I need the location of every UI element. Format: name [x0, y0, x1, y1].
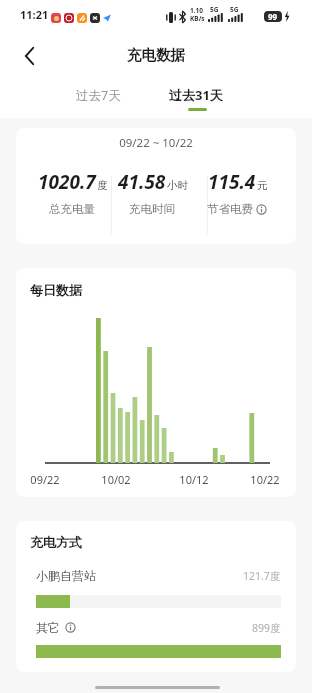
staticText: 小时 [167, 179, 188, 192]
staticText: 1.10 [190, 6, 203, 15]
staticText: 小鹏自营站 [36, 568, 96, 583]
button[interactable]: 节省电费 [187, 202, 287, 216]
staticText: 充电方式 [30, 534, 82, 550]
button[interactable]: 小鹏自营站 [36, 568, 281, 583]
staticText: 总充电量 [49, 202, 95, 216]
staticText: 10/12 [179, 472, 209, 487]
staticText: 121.7度 [243, 569, 281, 583]
button[interactable]: 其它 [36, 620, 281, 635]
staticText: KB/s [190, 14, 205, 23]
staticText: 09/22 ~ 10/22 [119, 135, 193, 151]
button[interactable]: 过去31天 [158, 80, 234, 110]
staticText: 899度 [252, 621, 281, 635]
staticText: 99 [268, 11, 278, 22]
staticText: 115.4 [208, 169, 256, 195]
staticText: 其它 [36, 620, 60, 635]
staticText: 充电数据 [127, 46, 185, 64]
staticText: 10/02 [101, 472, 131, 487]
staticText: 节省电费 [207, 202, 253, 216]
staticText: 10/22 [250, 472, 280, 487]
staticText: 元 [257, 179, 268, 192]
staticText: 度 [97, 179, 108, 192]
staticText: 11:21 [20, 7, 49, 22]
staticText: 09/22 [30, 472, 60, 487]
staticText: 41.58 [118, 169, 166, 195]
staticText: 5G [230, 5, 239, 14]
staticText: 过去7天 [76, 87, 121, 104]
staticText: 充电时间 [129, 202, 175, 216]
button[interactable]: 过去7天 [60, 80, 136, 110]
button[interactable] [14, 42, 44, 70]
staticText: 5G [210, 5, 219, 14]
staticText: 过去31天 [169, 86, 223, 104]
staticText: 每日数据 [30, 282, 82, 298]
staticText: 1020.7 [38, 169, 96, 195]
